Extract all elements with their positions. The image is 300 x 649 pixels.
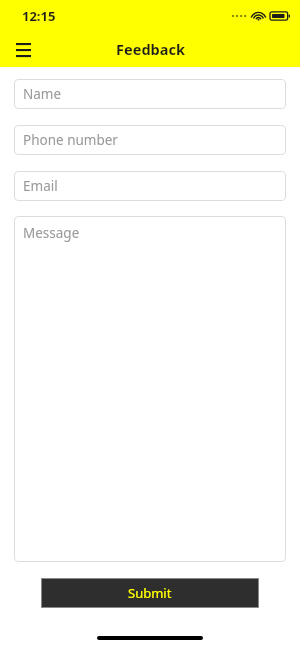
staticText: Name [23, 85, 62, 103]
button[interactable]: Phone number [14, 125, 286, 155]
staticText: Phone number [23, 131, 118, 149]
button[interactable]: Message [14, 216, 286, 562]
button[interactable]: Submit [41, 578, 259, 608]
staticText: Feedback [116, 39, 185, 59]
staticText: Message [23, 224, 80, 242]
button[interactable]: Open navigation menu [10, 36, 36, 62]
staticText: Submit [128, 584, 172, 602]
button[interactable]: Email [14, 171, 286, 201]
button[interactable]: Name [14, 79, 286, 109]
staticText: 12:15 [22, 7, 56, 25]
staticText: Email [23, 177, 58, 195]
